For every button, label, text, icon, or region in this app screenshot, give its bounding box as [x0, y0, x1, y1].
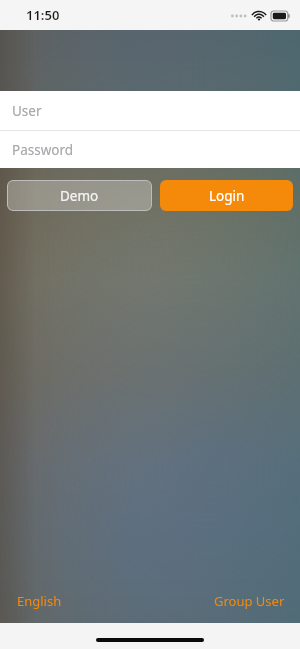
- staticText: Password: [12, 141, 74, 159]
- staticText: English: [17, 592, 62, 610]
- staticText: 11:50: [26, 6, 60, 24]
- button[interactable]: Login: [160, 180, 293, 211]
- staticText: User: [12, 102, 42, 120]
- staticText: Group User: [214, 592, 285, 610]
- other: Home indicator: [96, 638, 204, 642]
- staticText: Login: [209, 187, 245, 205]
- staticText: Demo: [60, 187, 99, 205]
- button[interactable]: Demo: [7, 180, 152, 211]
- button[interactable]: User: [0, 91, 300, 130]
- button[interactable]: Group User: [214, 592, 285, 610]
- button[interactable]: Password: [0, 131, 300, 168]
- button[interactable]: English: [17, 592, 62, 610]
